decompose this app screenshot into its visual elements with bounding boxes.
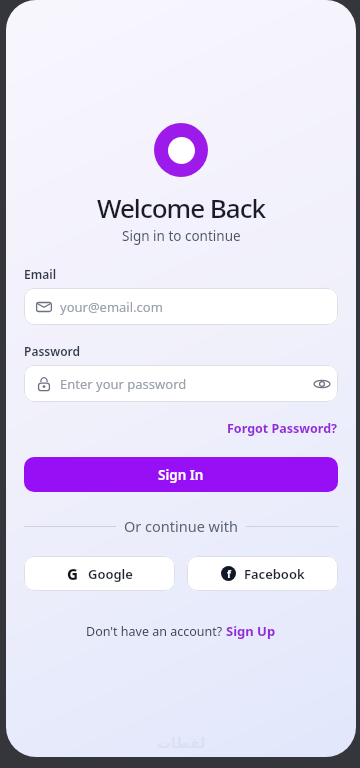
staticText: Sign In (158, 466, 204, 484)
staticText: Enter your password (60, 375, 187, 393)
staticText: لقطات (157, 735, 206, 751)
staticText: Password (24, 343, 338, 359)
button[interactable]: Forgot Password? (227, 420, 338, 437)
staticText: Facebook (244, 565, 305, 583)
staticText: Email (24, 266, 338, 282)
button[interactable]: Sign Up (226, 622, 276, 640)
staticText: G (67, 564, 78, 584)
button[interactable]: f (187, 556, 338, 591)
staticText: Welcome Back (97, 190, 266, 225)
staticText: Google (88, 565, 133, 583)
staticText: Don't have an account? (86, 623, 226, 640)
staticText: f (227, 567, 231, 581)
button[interactable]: Sign In (24, 457, 338, 492)
staticText: Or continue with (124, 516, 238, 536)
staticText: Sign in to continue (122, 227, 241, 245)
button[interactable]: G (24, 556, 175, 591)
button[interactable]: Enter your password (24, 365, 338, 402)
button[interactable]: your@email.com (24, 288, 338, 325)
staticText: your@email.com (60, 298, 163, 316)
